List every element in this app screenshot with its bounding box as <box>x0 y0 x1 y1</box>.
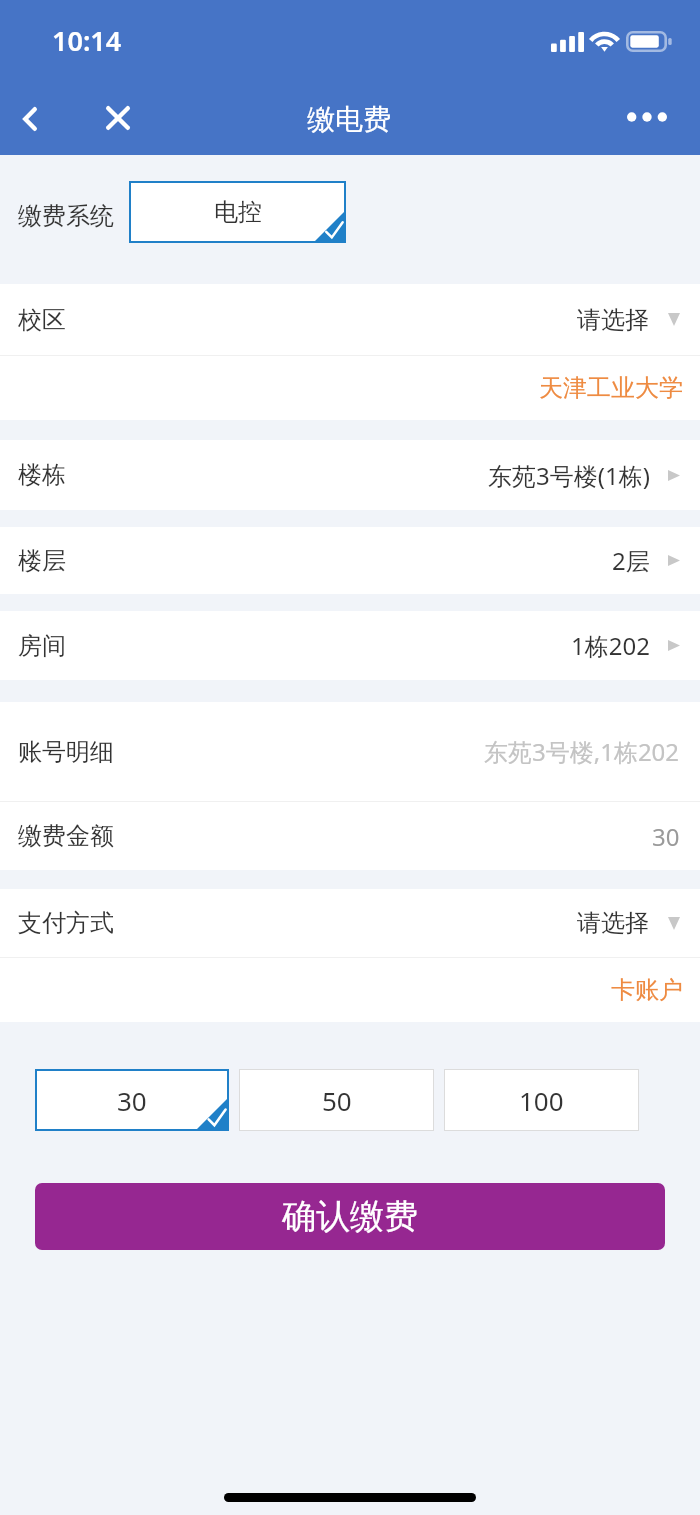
staticText: 请选择 <box>577 305 649 335</box>
staticText: 楼栋 <box>18 460 66 490</box>
staticText: 缴费系统 <box>18 201 114 231</box>
staticText: 房间 <box>18 631 66 661</box>
button[interactable]: Back <box>2 91 58 147</box>
button[interactable]: 缴费金额 <box>0 802 700 870</box>
button[interactable]: 楼层 <box>0 527 700 594</box>
staticText: 东苑3号楼(1栋) <box>488 459 650 492</box>
staticText: 天津工业大学 <box>539 373 683 403</box>
button[interactable]: More options <box>616 89 678 145</box>
staticText: 2层 <box>612 544 650 577</box>
staticText: 缴费金额 <box>18 821 114 851</box>
staticText: 确认缴费 <box>282 1195 418 1238</box>
staticText: 100 <box>519 1083 564 1118</box>
button[interactable]: 楼栋 <box>0 440 700 510</box>
staticText: 楼层 <box>18 546 66 576</box>
button[interactable]: 确认缴费 <box>35 1183 665 1250</box>
button[interactable]: 30 <box>35 1069 229 1131</box>
button[interactable]: 卡账户 <box>0 958 700 1022</box>
staticText: 30 <box>117 1083 147 1118</box>
staticText: 校区 <box>18 305 66 335</box>
staticText: 30 <box>652 820 680 853</box>
staticText: 电控 <box>214 197 262 227</box>
button[interactable]: 电控 <box>129 181 346 243</box>
button[interactable]: Close <box>90 90 146 146</box>
button[interactable]: 天津工业大学 <box>0 356 700 420</box>
button[interactable]: 支付方式 <box>0 889 700 957</box>
button[interactable]: 房间 <box>0 611 700 680</box>
staticText: 1栋202 <box>571 629 650 662</box>
staticText: 支付方式 <box>18 908 114 938</box>
staticText: 卡账户 <box>611 975 683 1005</box>
staticText: 缴电费 <box>307 102 391 137</box>
button[interactable]: 校区 <box>0 284 700 355</box>
staticText: 10:14 <box>52 22 122 59</box>
button[interactable]: 50 <box>239 1069 434 1131</box>
button[interactable]: 账号明细 <box>0 702 700 801</box>
button[interactable]: 100 <box>444 1069 639 1131</box>
staticText: 账号明细 <box>18 737 114 767</box>
staticText: 50 <box>322 1083 352 1118</box>
staticText: 东苑3号楼,1栋202 <box>484 735 680 768</box>
staticText: 请选择 <box>577 908 649 938</box>
